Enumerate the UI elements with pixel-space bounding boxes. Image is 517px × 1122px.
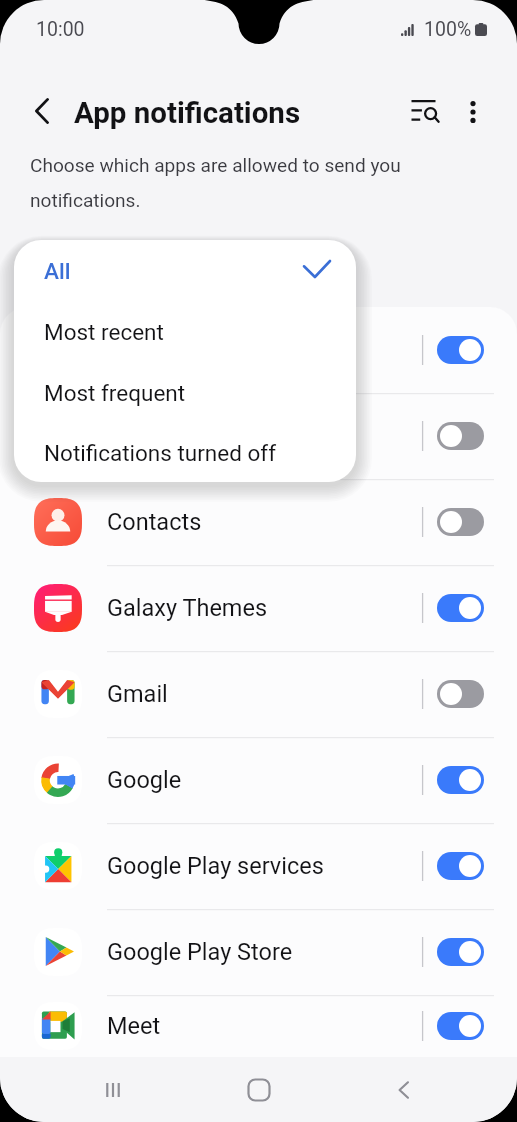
staticText: Google — [107, 766, 182, 794]
button[interactable]: All — [14, 240, 356, 301]
button[interactable]: Notifications turned off — [14, 423, 356, 482]
staticText: Google Play services — [107, 852, 324, 880]
button[interactable]: Gmail — [0, 651, 517, 737]
staticText: 10:00 — [36, 18, 85, 41]
button[interactable]: Most recent — [14, 301, 356, 362]
button[interactable]: Camera — [0, 393, 517, 479]
button[interactable]: Back — [372, 1058, 436, 1122]
button[interactable]: Contacts — [0, 479, 517, 565]
button[interactable]: Google Play services — [0, 823, 517, 909]
staticText: Gmail — [107, 680, 168, 708]
staticText: Camera — [107, 422, 189, 450]
staticText: All — [44, 258, 71, 284]
staticText: Galaxy Themes — [107, 594, 268, 622]
button[interactable]: Google Play Store — [0, 909, 517, 995]
staticText: Choose which apps are allowed to send yo… — [30, 154, 429, 212]
button[interactable]: Recents — [81, 1058, 145, 1122]
staticText: Calendar — [107, 336, 201, 364]
button[interactable]: Meet — [0, 995, 517, 1057]
staticText: Most recent — [44, 319, 164, 345]
staticText: Meet — [107, 1012, 161, 1040]
button[interactable]: Google — [0, 737, 517, 823]
staticText: Notifications turned off — [44, 440, 276, 466]
button[interactable]: Calendar — [0, 307, 517, 393]
staticText: App notifications — [74, 96, 301, 131]
button[interactable]: Most frequent — [14, 362, 356, 423]
button[interactable]: Back — [18, 87, 66, 135]
button[interactable]: Search — [400, 86, 450, 136]
button[interactable]: Galaxy Themes — [0, 565, 517, 651]
staticText: Most frequent — [44, 380, 186, 406]
staticText: Google Play Store — [107, 938, 293, 966]
staticText: Contacts — [107, 508, 202, 536]
button[interactable]: Home — [227, 1058, 291, 1122]
button[interactable]: More options — [448, 87, 498, 137]
staticText: 100% — [424, 18, 472, 41]
